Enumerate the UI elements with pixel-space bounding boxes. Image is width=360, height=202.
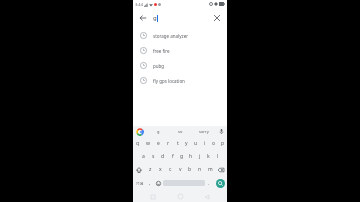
staticText: l	[217, 153, 219, 160]
button[interactable]: i	[200, 137, 209, 150]
staticText: pubg	[153, 63, 165, 69]
button[interactable]: z	[145, 163, 155, 176]
staticText: 3:44	[135, 2, 143, 7]
button[interactable]: q	[133, 137, 143, 150]
staticText: i	[204, 140, 206, 147]
staticText: a	[142, 153, 145, 160]
button[interactable]: h	[186, 150, 195, 163]
button[interactable]: w	[143, 137, 153, 150]
button[interactable]: c	[165, 163, 175, 176]
button[interactable]: b	[185, 163, 195, 176]
staticText: j	[199, 153, 201, 160]
staticText: r	[167, 140, 170, 147]
button[interactable]: ?1⌘	[133, 176, 146, 190]
staticText: sorry	[199, 129, 209, 134]
button[interactable]: s	[148, 150, 158, 163]
button[interactable]: f	[168, 150, 177, 163]
button[interactable]: x	[155, 163, 165, 176]
button[interactable]: Home	[173, 191, 187, 202]
button[interactable]: sorry	[192, 126, 215, 137]
button[interactable]: free fire	[133, 43, 227, 58]
staticText: g	[153, 14, 157, 22]
staticText: s	[152, 153, 155, 160]
button[interactable]: Voice input	[215, 126, 227, 137]
button[interactable]: Back	[133, 8, 153, 28]
button[interactable]: a	[138, 150, 148, 163]
button[interactable]: Recents	[146, 191, 160, 202]
button[interactable]: storage analyzer	[133, 28, 227, 43]
button[interactable]: r	[163, 137, 173, 150]
staticText: fly gps location	[153, 78, 185, 84]
button[interactable]: Emoji	[154, 176, 163, 190]
staticText: y	[185, 140, 188, 147]
staticText: g	[157, 129, 160, 134]
button[interactable]: m	[205, 163, 215, 176]
button[interactable]: l	[213, 150, 222, 163]
button[interactable]: t	[173, 137, 182, 150]
button[interactable]: Shift	[133, 163, 145, 176]
staticText: d	[161, 153, 165, 160]
button[interactable]: Search	[216, 179, 225, 188]
button[interactable]: u	[191, 137, 200, 150]
button[interactable]: o	[209, 137, 218, 150]
staticText: m	[208, 166, 213, 173]
staticText: h	[189, 153, 193, 160]
staticText: p	[221, 140, 225, 147]
staticText: b	[188, 166, 192, 173]
staticText: v	[179, 166, 182, 173]
button[interactable]: Backspace	[215, 163, 227, 176]
staticText: g	[180, 153, 184, 160]
staticText: o	[212, 140, 216, 147]
staticText: c	[169, 166, 172, 173]
staticText: u	[194, 140, 198, 147]
button[interactable]: v	[175, 163, 185, 176]
button[interactable]: ,	[146, 176, 154, 190]
button[interactable]: j	[195, 150, 204, 163]
staticText: storage analyzer	[153, 33, 189, 39]
staticText: z	[149, 166, 152, 173]
button[interactable]: so	[169, 126, 192, 137]
button[interactable]: g	[177, 150, 186, 163]
staticText: e	[157, 140, 160, 147]
button[interactable]: Back	[200, 191, 214, 202]
button[interactable]: p	[218, 137, 227, 150]
staticText: n	[198, 166, 202, 173]
button[interactable]: y	[182, 137, 191, 150]
button[interactable]: g	[147, 126, 169, 137]
button[interactable]: pubg	[133, 58, 227, 73]
staticText: t	[177, 140, 179, 147]
staticText: .	[208, 180, 210, 186]
button[interactable]: .	[205, 176, 213, 190]
staticText: k	[207, 153, 210, 160]
staticText: x	[159, 166, 162, 173]
staticText: so	[178, 129, 183, 134]
staticText: ,	[149, 180, 151, 186]
staticText: ?1⌘	[136, 181, 144, 186]
button[interactable]: Google	[133, 126, 147, 137]
staticText: q	[136, 140, 140, 147]
button[interactable]: k	[204, 150, 213, 163]
staticText: w	[146, 140, 150, 147]
button[interactable]: fly gps location	[133, 73, 227, 88]
button[interactable]: n	[195, 163, 205, 176]
button[interactable]: d	[158, 150, 168, 163]
button[interactable]: Clear	[207, 8, 227, 28]
button[interactable]: e	[153, 137, 163, 150]
staticText: f	[172, 153, 174, 160]
staticText: free fire	[153, 48, 170, 54]
